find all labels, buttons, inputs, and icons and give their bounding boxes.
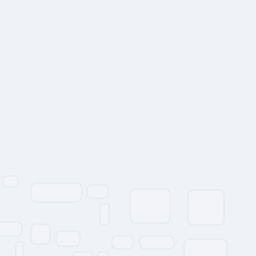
button[interactable]: Item 11 <box>98 252 108 256</box>
button[interactable]: Item 10 <box>73 252 93 256</box>
button[interactable]: Card 3 <box>31 224 50 244</box>
button[interactable]: Item 3 <box>87 185 108 198</box>
button[interactable]: Item 4 <box>100 204 109 225</box>
button[interactable]: Item 5 <box>0 222 22 236</box>
button[interactable]: Item 8 <box>112 236 133 249</box>
button[interactable]: Item 9 <box>140 236 174 249</box>
button[interactable]: Item 2 <box>31 183 82 202</box>
button[interactable]: Item 6 <box>56 231 80 246</box>
button[interactable]: Item 7 <box>16 242 23 256</box>
button[interactable]: Item 1 <box>3 176 18 187</box>
